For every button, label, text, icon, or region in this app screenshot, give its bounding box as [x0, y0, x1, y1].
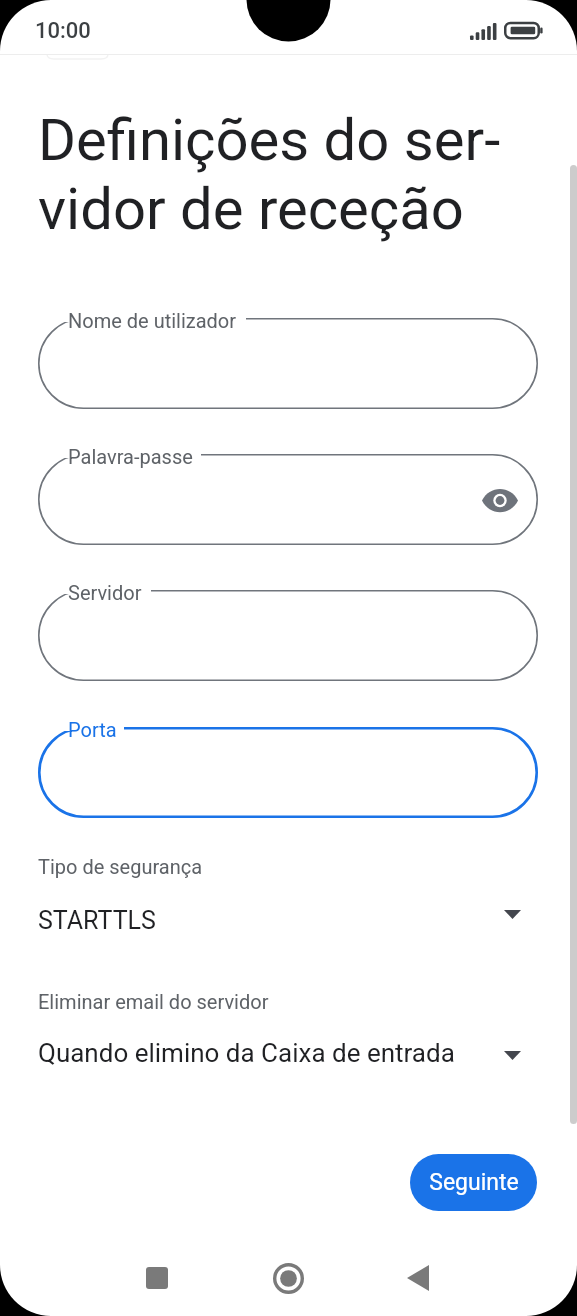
button[interactable]: Porta: [38, 727, 538, 818]
button[interactable]: Palavra-passe: [38, 454, 538, 545]
staticText: STARTTLS: [38, 906, 156, 935]
staticText: Eliminar email do servidor: [38, 990, 269, 1013]
button[interactable]: Eliminar email do servidor: [38, 990, 538, 1091]
button[interactable]: Servidor: [38, 590, 538, 681]
staticText: Nome de utilizador: [68, 309, 237, 332]
staticText: Servidor: [68, 581, 142, 604]
staticText: Definições do ser- vidor de receção: [38, 106, 501, 243]
staticText: Palavra-passe: [68, 445, 193, 468]
staticText: 10:00: [35, 18, 91, 44]
button[interactable]: Recents: [122, 1250, 192, 1306]
button[interactable]: Mostrar palavra-passe: [478, 478, 522, 522]
button[interactable]: Tipo de segurança: [38, 855, 538, 950]
button[interactable]: Seguinte: [410, 1154, 537, 1211]
staticText: Tipo de segurança: [38, 855, 203, 878]
staticText: Porta: [68, 718, 117, 741]
button[interactable]: Back: [383, 1250, 453, 1306]
button[interactable]: Nome de utilizador: [38, 318, 538, 409]
staticText: Quando elimino da Caixa de entrada: [38, 1038, 455, 1068]
button[interactable]: Home: [253, 1250, 323, 1306]
staticText: Seguinte: [429, 1169, 519, 1196]
